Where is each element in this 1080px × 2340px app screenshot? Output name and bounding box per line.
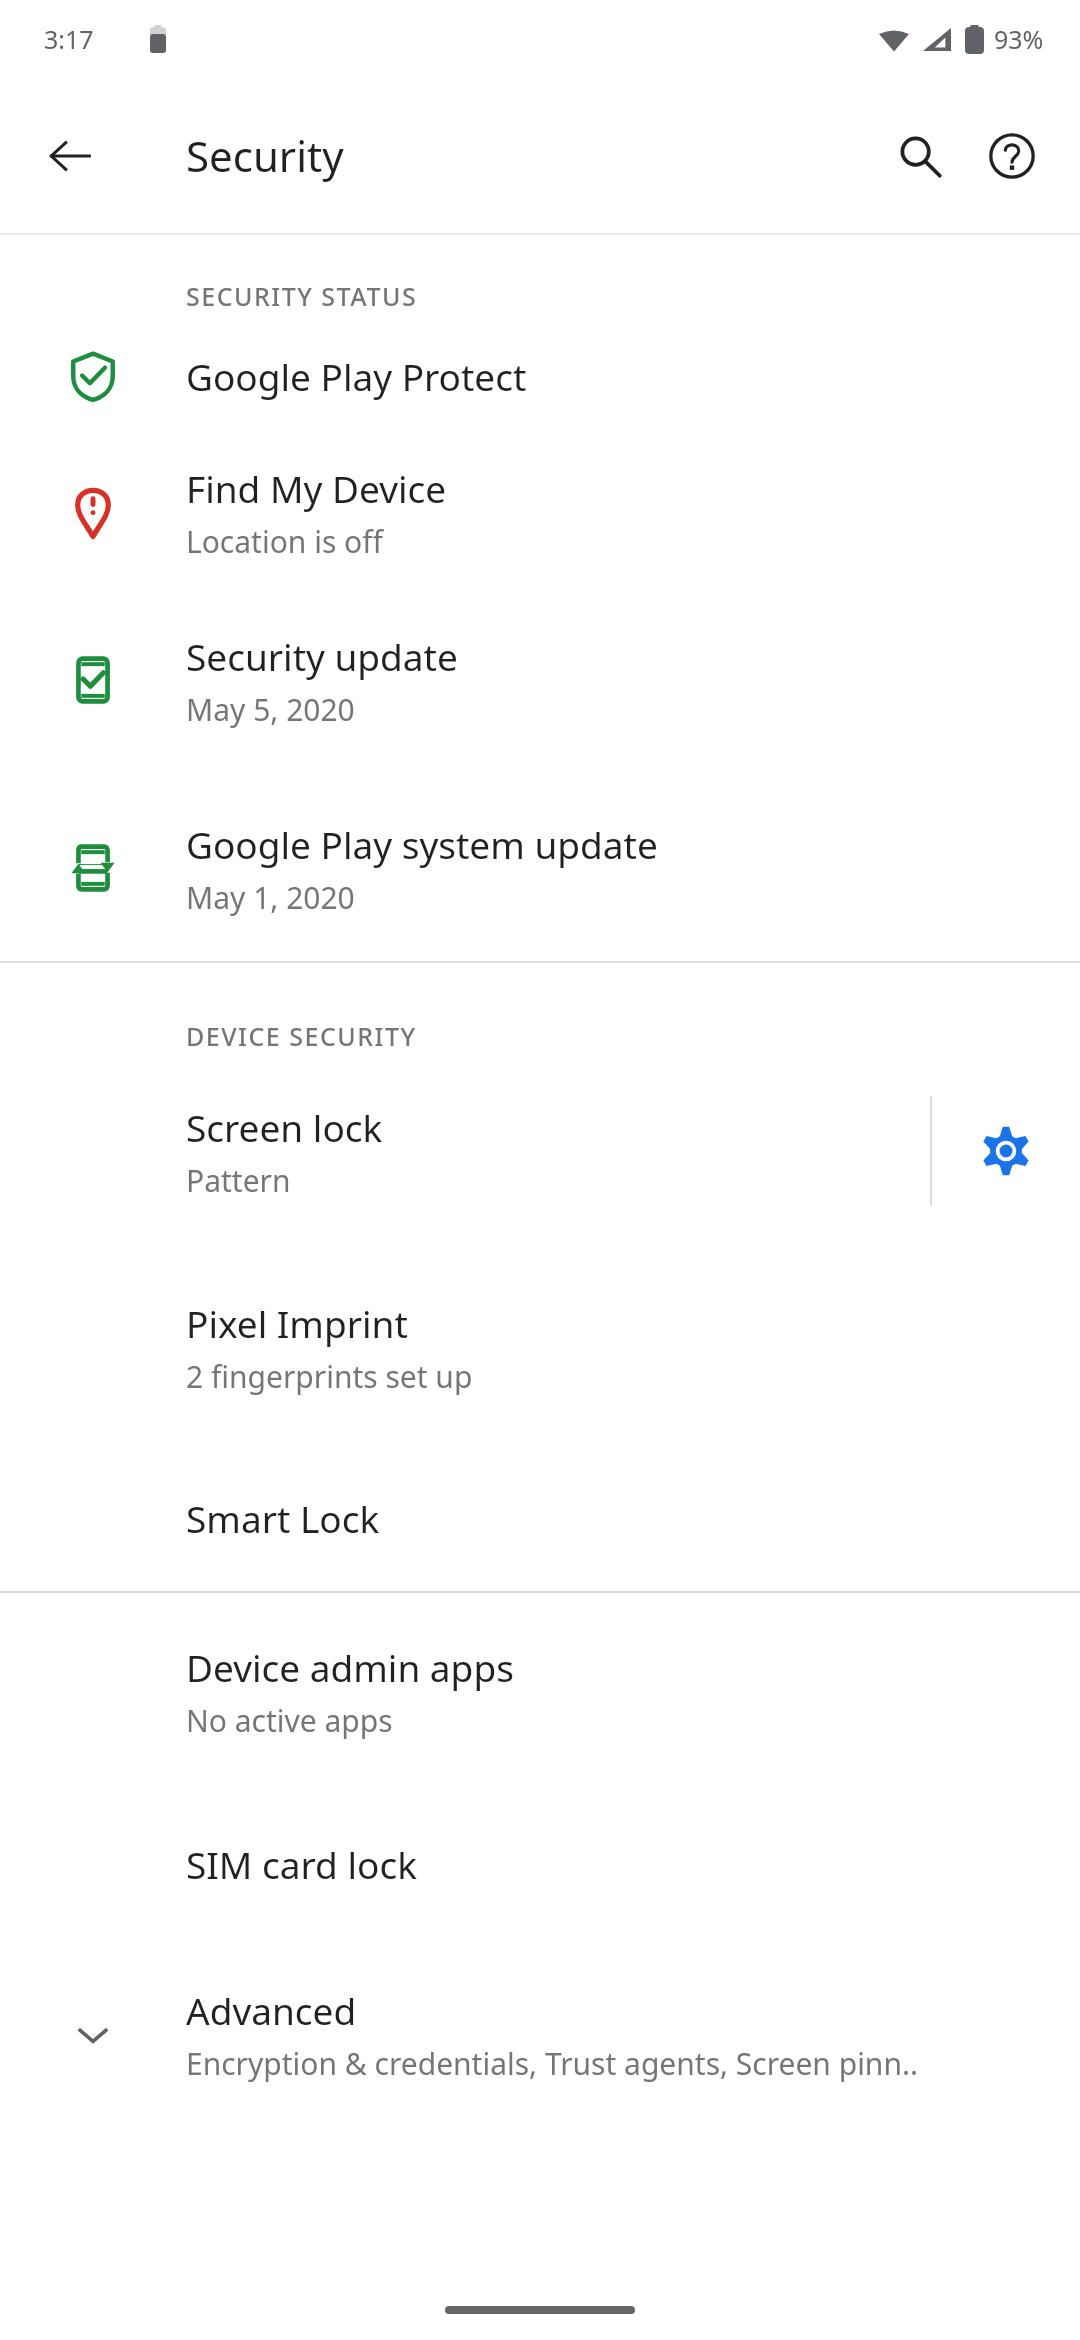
button[interactable]: Smart Lock	[0, 1445, 1080, 1591]
button[interactable]: Search	[874, 110, 966, 202]
staticText: Pixel Imprint	[186, 1298, 408, 1348]
staticText: Smart Lock	[186, 1493, 380, 1543]
staticText: SIM card lock	[186, 1839, 417, 1889]
button[interactable]: Pixel Imprint	[0, 1249, 1080, 1445]
staticText: Location is off	[186, 521, 383, 562]
button[interactable]: Back	[28, 114, 112, 198]
button[interactable]: Screen lock	[0, 1053, 930, 1249]
staticText: Advanced	[186, 1985, 357, 2035]
staticText: Device admin apps	[186, 1642, 514, 1692]
staticText: Security update	[186, 631, 458, 681]
staticText: 2 fingerprints set up	[186, 1356, 473, 1397]
button[interactable]: Security update	[0, 585, 1080, 775]
staticText: Find My Device	[186, 463, 447, 513]
button[interactable]: SIM card lock	[0, 1789, 1080, 1939]
staticText: Pattern	[186, 1160, 291, 1201]
button[interactable]: Screen lock settings	[932, 1053, 1080, 1249]
button[interactable]: Google Play system update	[0, 775, 1080, 961]
staticText: 3:17	[44, 22, 94, 56]
button[interactable]: Find My Device	[0, 439, 1080, 585]
staticText: Google Play system update	[186, 819, 658, 869]
staticText: 93%	[994, 22, 1044, 56]
staticText: May 5, 2020	[186, 689, 355, 730]
staticText: SECURITY STATUS	[186, 279, 418, 313]
button[interactable]: Advanced	[0, 1939, 1080, 2129]
staticText: Google Play Protect	[186, 351, 527, 401]
button[interactable]: Device admin apps	[0, 1593, 1080, 1789]
staticText: DEVICE SECURITY	[186, 1019, 417, 1053]
staticText: No active apps	[186, 1700, 393, 1741]
staticText: Security	[186, 127, 344, 184]
button[interactable]: Help	[966, 110, 1058, 202]
button[interactable]: Google Play Protect	[0, 313, 1080, 439]
staticText: Screen lock	[186, 1102, 383, 1152]
staticText: May 1, 2020	[186, 877, 355, 918]
staticText: Encryption & credentials, Trust agents, …	[186, 2043, 919, 2084]
